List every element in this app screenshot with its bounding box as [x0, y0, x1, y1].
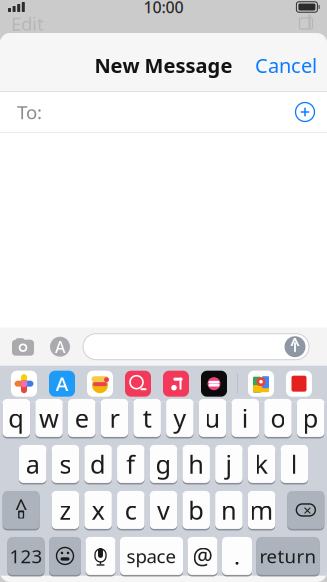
button[interactable]: Music — [151, 371, 189, 397]
button[interactable]: y — [166, 398, 194, 439]
button[interactable]: Maps — [238, 371, 274, 397]
staticText: w — [39, 401, 59, 435]
staticText: Cancel — [255, 52, 317, 79]
staticText: r — [109, 401, 119, 435]
button[interactable]: c — [117, 490, 145, 531]
staticText: 123 — [9, 544, 42, 568]
button[interactable]: Message text field — [71, 333, 309, 361]
button[interactable]: g — [150, 444, 177, 485]
button[interactable]: o — [264, 398, 292, 439]
button[interactable]: u — [199, 398, 226, 439]
button[interactable]: . — [222, 536, 252, 577]
button[interactable]: s — [52, 444, 79, 485]
button[interactable]: z — [52, 490, 79, 531]
button[interactable]: j — [215, 444, 243, 485]
staticText: A — [55, 336, 65, 357]
button[interactable]: v — [150, 490, 177, 531]
button[interactable]: m — [248, 490, 275, 531]
staticText: f — [126, 447, 135, 481]
button[interactable]: To field, add recipient — [0, 92, 327, 132]
staticText: i — [242, 401, 249, 435]
button[interactable]: Emoji — [49, 536, 81, 577]
staticText: Edit — [11, 11, 44, 36]
button[interactable]: Cancel — [245, 44, 327, 87]
button[interactable]: d — [84, 444, 112, 485]
staticText: d — [90, 447, 106, 481]
button[interactable]: Images — [113, 371, 151, 397]
staticText: . — [234, 541, 240, 571]
staticText: ^ — [15, 492, 28, 522]
button[interactable]: n — [215, 490, 243, 531]
button[interactable]: i — [231, 398, 259, 439]
button[interactable]: k — [248, 444, 275, 485]
staticText: v — [157, 493, 170, 527]
staticText: p — [303, 401, 319, 435]
staticText: q — [8, 401, 24, 435]
staticText: z — [59, 493, 71, 527]
button[interactable]: f — [117, 444, 144, 485]
staticText: space — [126, 544, 176, 568]
button[interactable]: More apps — [274, 371, 312, 397]
button[interactable]: Delete — [287, 490, 324, 531]
staticText: y — [173, 401, 186, 435]
button[interactable]: Photos — [0, 371, 37, 397]
staticText: n — [221, 493, 237, 527]
staticText: @ — [192, 541, 212, 571]
button[interactable]: q — [3, 398, 30, 439]
button[interactable]: t — [133, 398, 161, 439]
button[interactable]: r — [101, 398, 128, 439]
button[interactable]: l — [280, 444, 308, 485]
button[interactable]: Camera — [0, 336, 35, 358]
staticText: return — [259, 544, 316, 568]
staticText: g — [155, 447, 171, 481]
button[interactable]: w — [35, 398, 63, 439]
staticText: j — [225, 447, 232, 481]
button[interactable]: space — [120, 536, 183, 577]
button[interactable]: Dictate — [85, 536, 115, 577]
staticText: k — [255, 447, 269, 481]
button[interactable]: Apps — [35, 336, 71, 358]
staticText: o — [270, 401, 285, 435]
button[interactable]: Shift — [3, 490, 40, 531]
staticText: s — [59, 447, 71, 481]
staticText: e — [75, 401, 89, 435]
staticText: 10:00 — [143, 0, 183, 18]
staticText: x — [92, 493, 105, 527]
button[interactable]: p — [297, 398, 324, 439]
button[interactable]: 123 — [7, 536, 44, 577]
staticText: t — [143, 401, 152, 435]
button[interactable]: return — [256, 536, 319, 577]
button[interactable]: App Store — [37, 370, 75, 397]
staticText: New Message — [94, 52, 232, 79]
staticText: l — [291, 447, 298, 481]
button[interactable]: e — [68, 398, 95, 439]
button[interactable]: x — [84, 490, 112, 531]
button[interactable]: Memoji — [75, 371, 113, 397]
staticText: c — [125, 493, 137, 527]
staticText: × — [303, 500, 311, 520]
staticText: To: — [17, 100, 42, 124]
button[interactable]: Apple Pay — [189, 371, 227, 397]
staticText: m — [250, 493, 274, 527]
button[interactable]: @ — [187, 536, 217, 577]
staticText: a — [26, 447, 40, 481]
staticText: ^ — [290, 333, 300, 356]
staticText: u — [204, 401, 220, 435]
staticText: A — [55, 370, 68, 397]
staticText: h — [188, 447, 204, 481]
staticText: b — [188, 493, 204, 527]
button[interactable]: b — [182, 490, 210, 531]
button[interactable]: h — [182, 444, 210, 485]
button[interactable]: a — [19, 444, 46, 485]
